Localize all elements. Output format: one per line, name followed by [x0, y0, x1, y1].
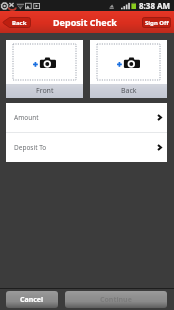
- button[interactable]: Back: [90, 40, 167, 98]
- staticText: Back: [121, 86, 137, 96]
- staticText: Cancel: [20, 295, 44, 305]
- staticText: Front: [36, 86, 54, 96]
- button[interactable]: Cancel: [6, 291, 58, 308]
- staticText: Amount: [14, 113, 39, 122]
- button[interactable]: Sign Off: [142, 17, 171, 28]
- staticText: Sign Off: [145, 19, 169, 27]
- button[interactable]: Front: [6, 40, 83, 98]
- staticText: Continue: [100, 295, 132, 305]
- staticText: 8:38 AM: [139, 0, 171, 11]
- button[interactable]: Continue: [65, 291, 167, 308]
- staticText: Deposit Check: [53, 16, 117, 28]
- button[interactable]: Amount: [6, 103, 167, 132]
- button[interactable]: Back: [2, 17, 31, 28]
- staticText: Back: [12, 19, 27, 27]
- staticText: Deposit To: [14, 143, 47, 152]
- button[interactable]: Deposit To: [6, 133, 167, 162]
